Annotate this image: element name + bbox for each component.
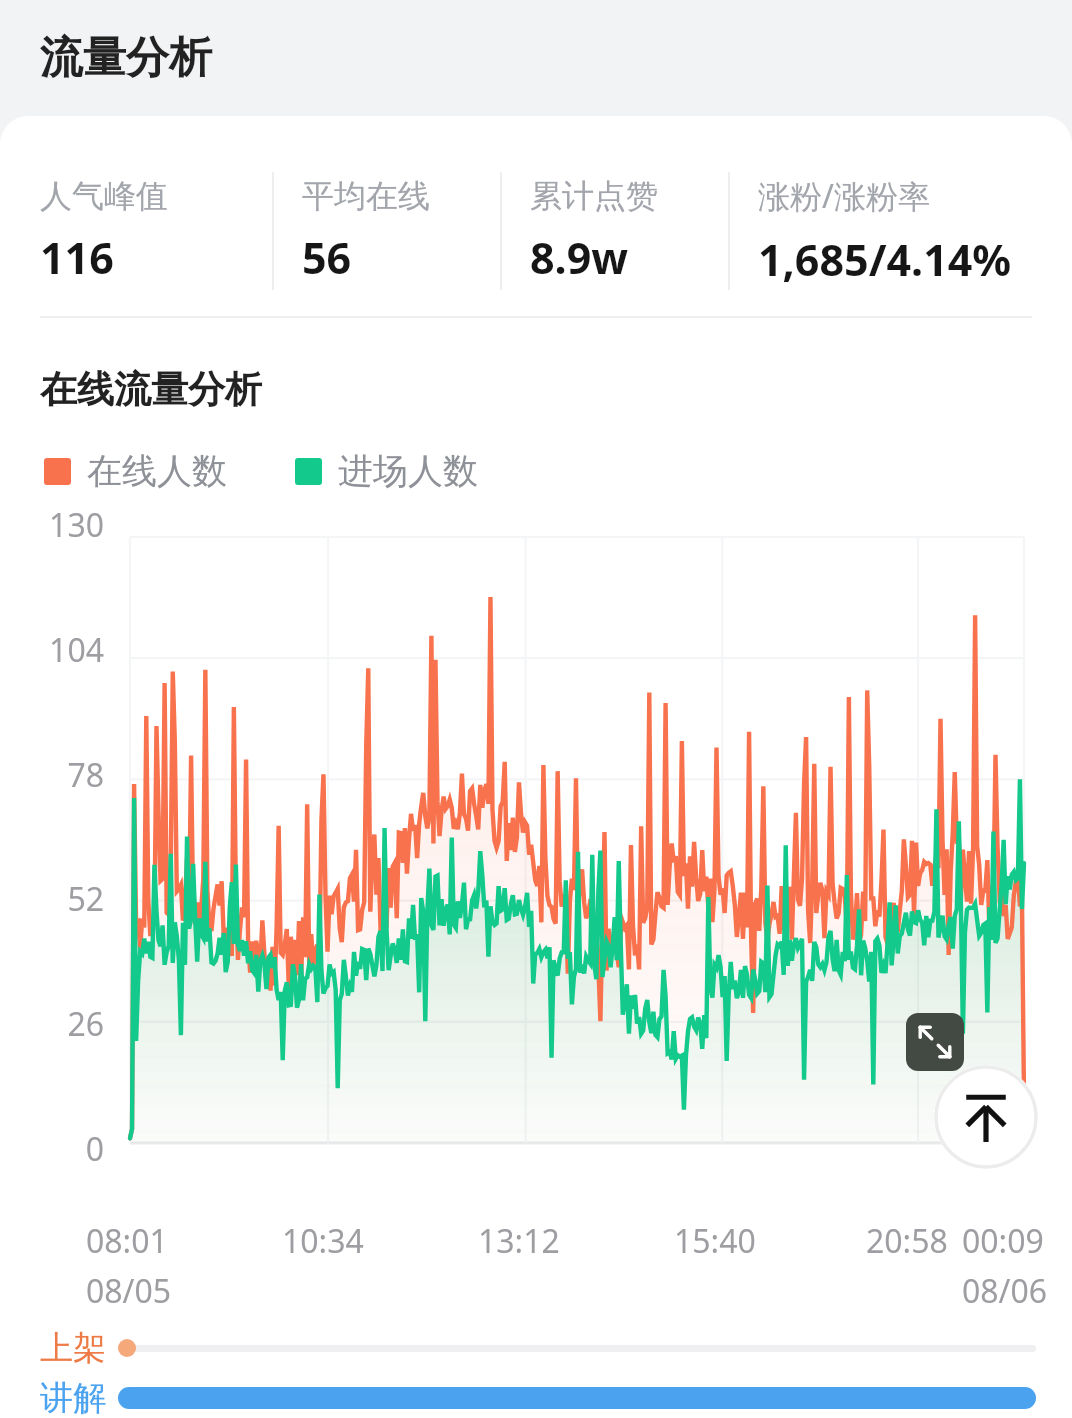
staticText: 26 bbox=[0, 1002, 104, 1046]
staticText: 13:12 bbox=[478, 1219, 560, 1263]
staticText: 10:34 bbox=[282, 1219, 364, 1263]
button[interactable]: Back to top bbox=[934, 1065, 1038, 1169]
staticText: 104 bbox=[0, 628, 104, 672]
staticText: 78 bbox=[0, 753, 104, 797]
staticText: 上架 bbox=[40, 1327, 106, 1369]
button[interactable]: 上架 bbox=[0, 1319, 1072, 1377]
staticText: 08/05 bbox=[86, 1269, 172, 1313]
staticText: 涨粉/涨粉率 bbox=[758, 174, 930, 218]
staticText: 15:40 bbox=[674, 1219, 756, 1263]
staticText: 1,685/4.14% bbox=[758, 230, 1012, 289]
staticText: 56 bbox=[302, 228, 352, 287]
staticText: 116 bbox=[40, 228, 114, 287]
staticText: 20:58 bbox=[866, 1219, 948, 1263]
staticText: 130 bbox=[0, 503, 104, 547]
staticText: 在线人数 bbox=[87, 449, 227, 493]
staticText: 00:09 bbox=[962, 1219, 1044, 1263]
staticText: 08/06 bbox=[962, 1269, 1048, 1313]
staticText: 平均在线 bbox=[302, 176, 430, 216]
staticText: 流量分析 bbox=[40, 31, 212, 85]
staticText: 进场人数 bbox=[338, 449, 478, 493]
staticText: 累计点赞 bbox=[530, 176, 658, 216]
staticText: 52 bbox=[0, 877, 104, 921]
staticText: 在线流量分析 bbox=[40, 366, 262, 413]
staticText: 人气峰值 bbox=[40, 176, 168, 216]
staticText: 讲解 bbox=[40, 1377, 106, 1418]
staticText: 0 bbox=[0, 1127, 104, 1171]
staticText: 8.9w bbox=[530, 228, 629, 287]
button[interactable]: Fullscreen bbox=[906, 1013, 964, 1071]
staticText: 08:01 bbox=[86, 1219, 168, 1263]
button[interactable]: 讲解 bbox=[0, 1377, 1072, 1418]
